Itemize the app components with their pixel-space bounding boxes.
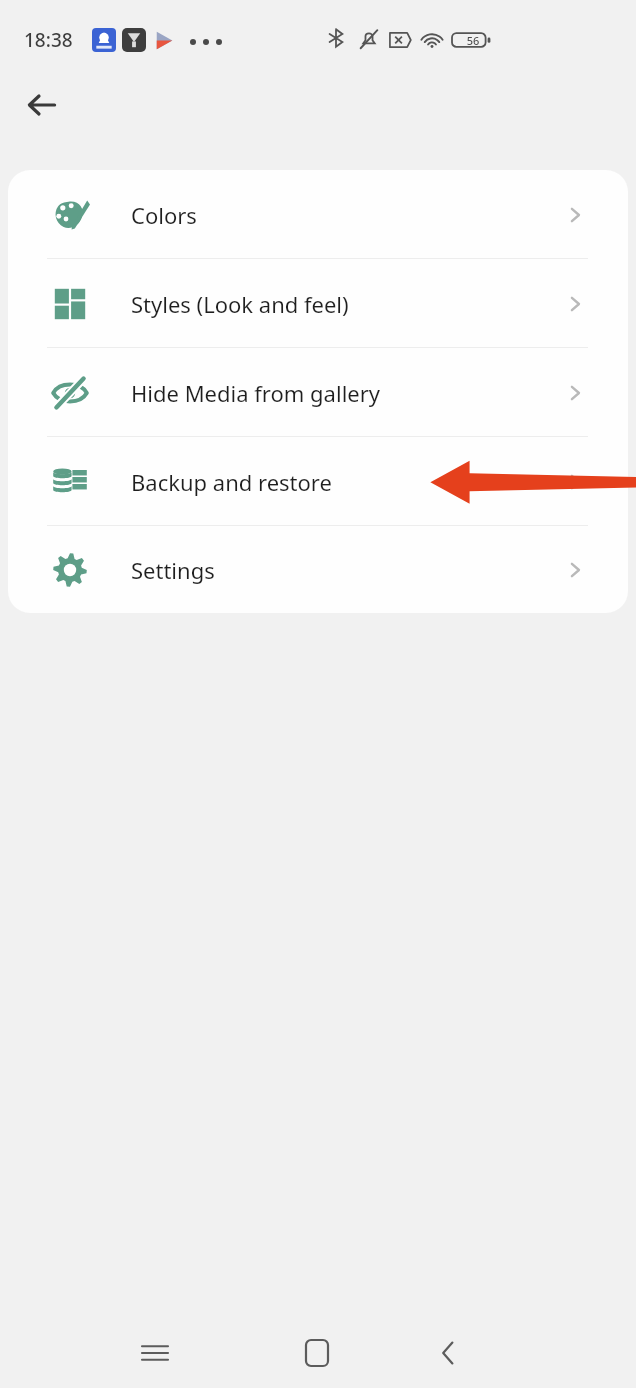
staticText: Colors — [131, 200, 197, 230]
staticText: Backup and restore — [131, 467, 332, 497]
staticText: Hide Media from gallery — [131, 378, 381, 408]
staticText: Styles (Look and feel) — [131, 289, 349, 319]
button[interactable]: Back — [8, 78, 76, 132]
staticText: 18:38 — [24, 27, 73, 53]
button[interactable]: Settings — [8, 526, 628, 613]
button[interactable]: Backup and restore — [8, 437, 628, 526]
staticText: Settings — [131, 555, 215, 585]
button[interactable]: Home — [282, 1328, 352, 1378]
button[interactable]: Styles (Look and feel) — [8, 259, 628, 348]
button[interactable]: Hide Media from gallery — [8, 348, 628, 437]
staticText: 56 — [458, 33, 488, 48]
button[interactable]: Colors — [8, 170, 628, 259]
button[interactable]: Recents — [120, 1328, 190, 1378]
button[interactable]: Back — [413, 1328, 483, 1378]
